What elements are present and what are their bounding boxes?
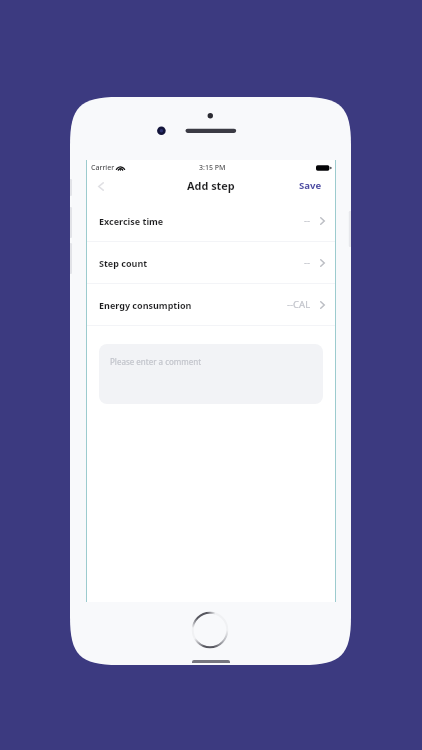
staticText: -- (304, 214, 311, 227)
button[interactable]: Excercise time (86, 200, 336, 241)
button[interactable]: Please enter a comment (99, 344, 323, 404)
button[interactable]: Save (299, 179, 322, 192)
button[interactable]: Step count (86, 242, 336, 283)
button[interactable]: Back (86, 175, 112, 200)
staticText: Add step (187, 178, 235, 193)
button[interactable]: Energy consumption (86, 284, 336, 325)
staticText: 3:15 PM (199, 163, 226, 173)
staticText: Step count (99, 257, 148, 269)
staticText: Energy consumption (99, 299, 192, 311)
staticText: Please enter a comment (110, 356, 202, 367)
staticText: Save (299, 179, 322, 192)
staticText: Carrier (91, 163, 115, 173)
staticText: Excercise time (99, 215, 164, 227)
staticText: -- (304, 256, 311, 269)
staticText: --CAL (287, 298, 311, 311)
